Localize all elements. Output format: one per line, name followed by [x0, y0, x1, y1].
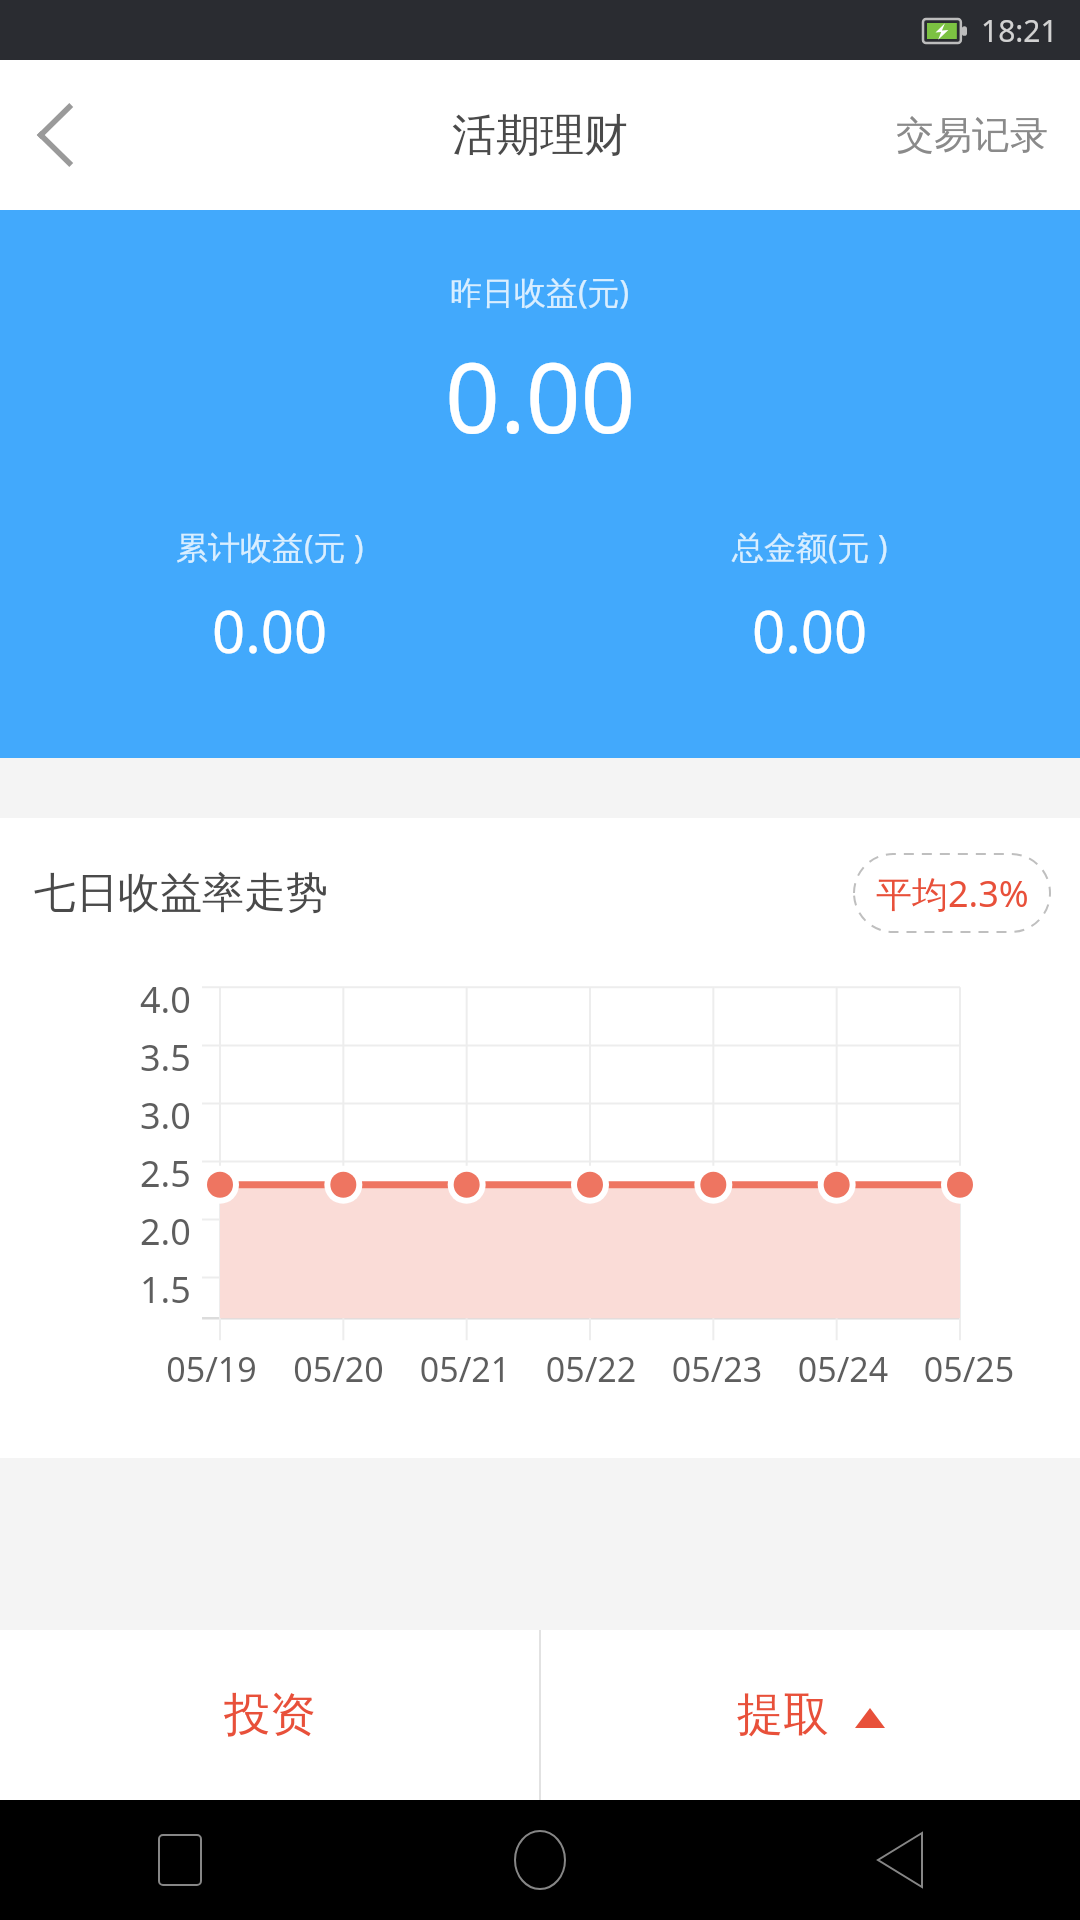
- staticText: 05/21: [402, 1346, 528, 1392]
- button[interactable]: Home: [360, 1800, 720, 1920]
- staticText: 3.5: [140, 1033, 191, 1082]
- staticText: 05/20: [275, 1346, 402, 1392]
- staticText: 05/22: [528, 1346, 654, 1392]
- staticText: 投资: [224, 1686, 316, 1744]
- button[interactable]: 提取: [541, 1630, 1080, 1800]
- staticText: 0.00: [212, 591, 328, 670]
- staticText: 1.5: [140, 1265, 191, 1314]
- button[interactable]: Recents: [0, 1800, 360, 1920]
- staticText: 05/25: [906, 1346, 1032, 1392]
- button[interactable]: Back: [720, 1800, 1080, 1920]
- staticText: 3.0: [140, 1091, 191, 1140]
- button[interactable]: Back: [0, 60, 110, 210]
- staticText: 平均2.3%: [876, 869, 1029, 918]
- staticText: 05/19: [148, 1346, 275, 1392]
- staticText: 05/23: [654, 1346, 780, 1392]
- staticText: 18:21: [981, 10, 1058, 51]
- staticText: 4.0: [140, 975, 191, 1024]
- staticText: 交易记录: [896, 111, 1048, 159]
- staticText: 总金额(元 ): [732, 525, 888, 569]
- staticText: 昨日收益(元): [450, 270, 630, 314]
- staticText: 累计收益(元 ): [176, 525, 364, 569]
- staticText: 05/24: [780, 1346, 906, 1392]
- staticText: 0.00: [752, 591, 868, 670]
- staticText: 2.0: [140, 1207, 191, 1256]
- button[interactable]: 平均2.3%: [854, 854, 1050, 932]
- staticText: 七日收益率走势: [34, 867, 328, 920]
- button[interactable]: 交易记录: [864, 60, 1080, 210]
- staticText: 活期理财: [452, 108, 628, 163]
- staticText: 提取: [737, 1686, 829, 1744]
- staticText: 0.00: [445, 330, 636, 461]
- staticText: 2.5: [140, 1149, 191, 1198]
- button[interactable]: 投资: [0, 1630, 539, 1800]
